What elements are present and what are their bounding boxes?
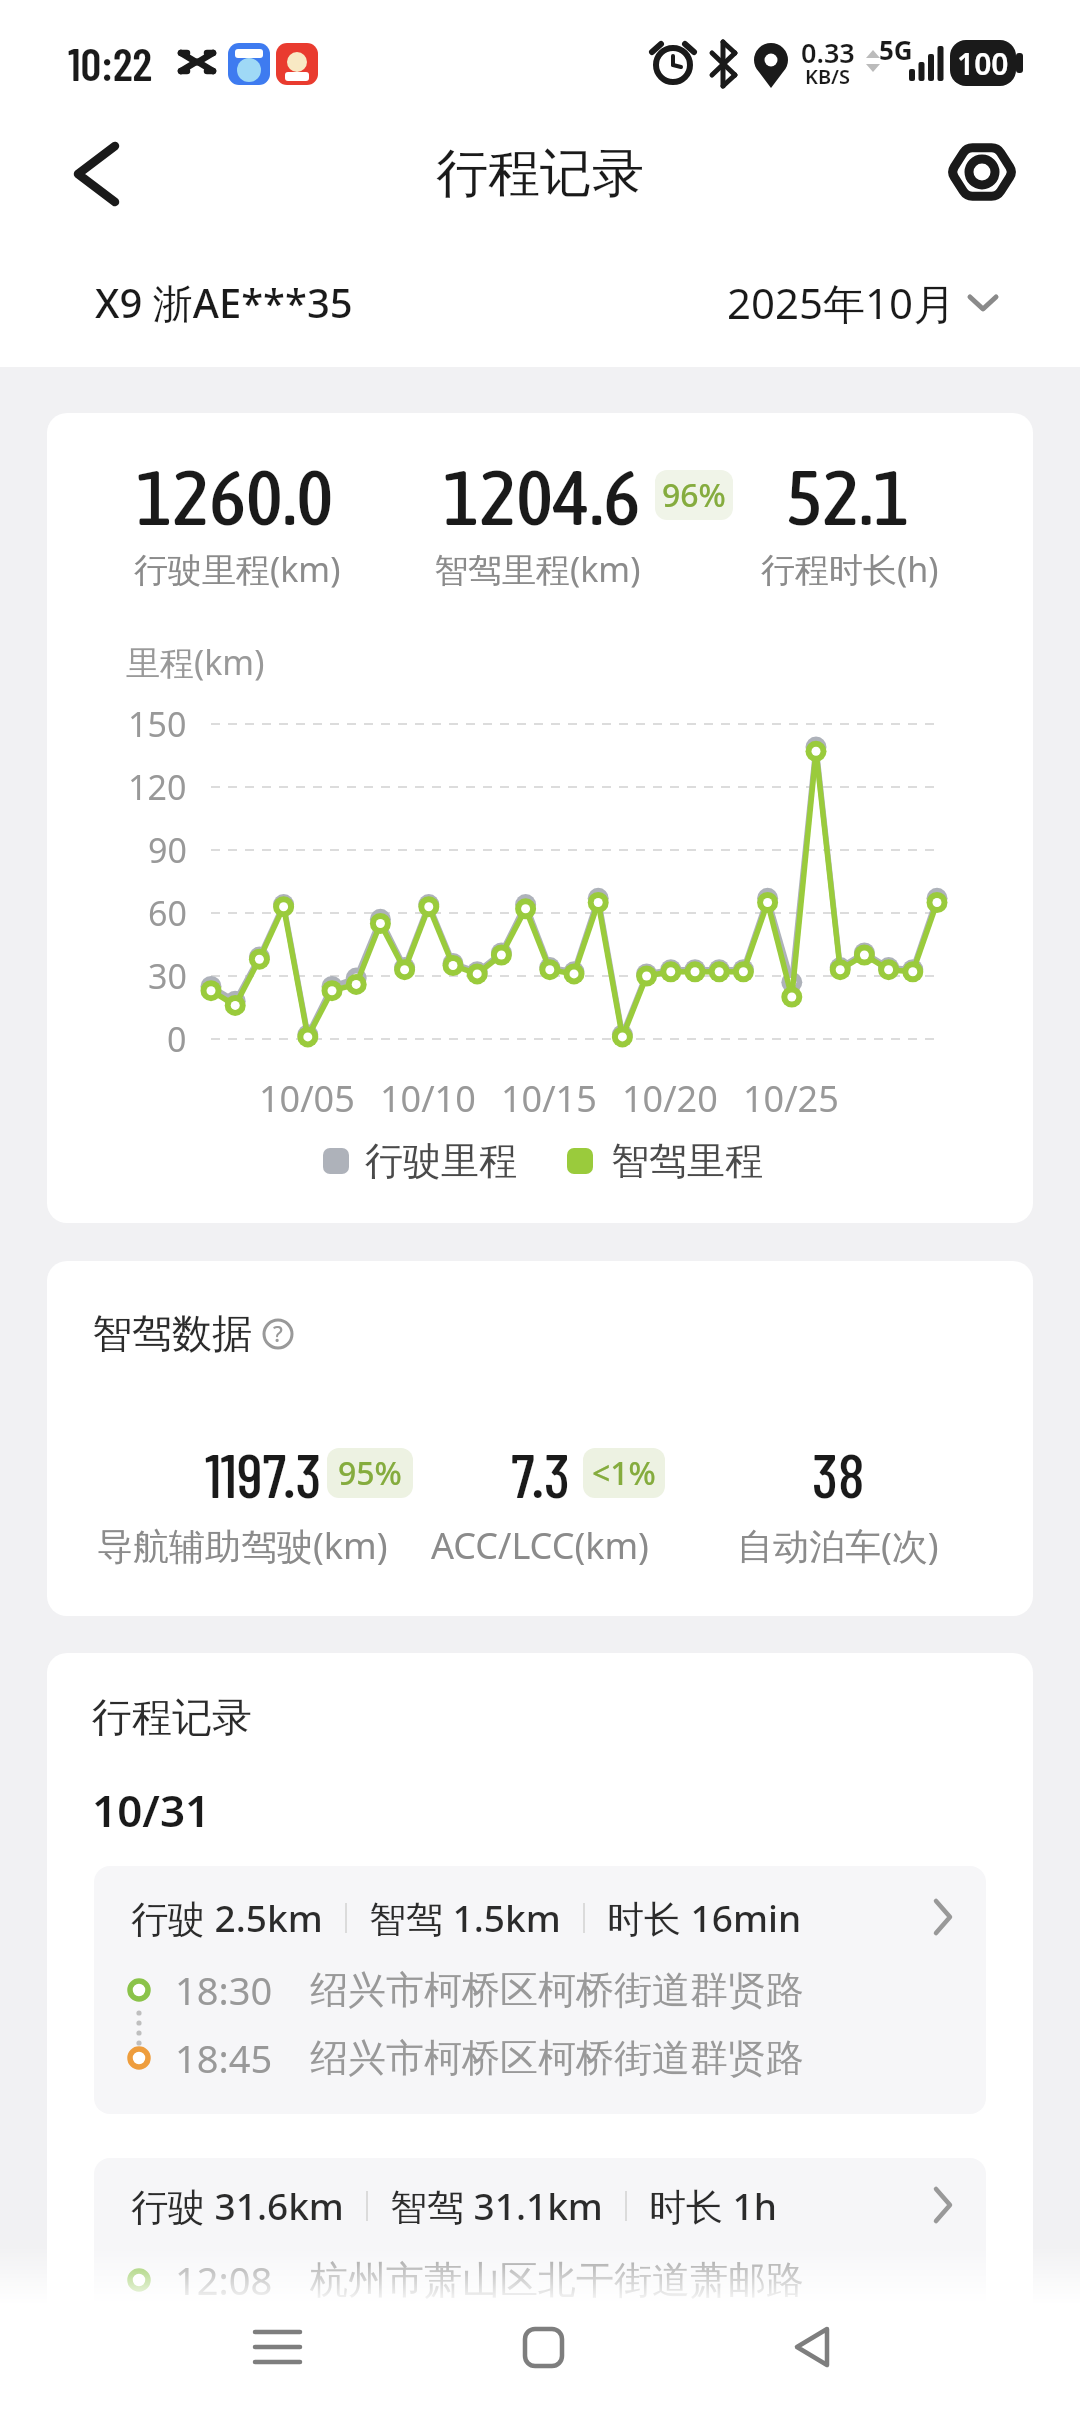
button[interactable] — [94, 2158, 986, 2406]
staticText: 智驾数据 — [92, 1308, 252, 1358]
staticText: 1260.0 — [136, 452, 334, 541]
staticText: 行程时长(h) — [761, 546, 939, 592]
staticText: 10/15 — [501, 1074, 597, 1123]
staticText: 里程(km) — [126, 639, 265, 685]
staticText: 100 — [957, 43, 1009, 84]
button[interactable] — [60, 140, 130, 210]
staticText: 10/25 — [743, 1074, 839, 1123]
button[interactable]: 2025年10月 — [700, 270, 1000, 334]
staticText: 18:30 — [175, 1964, 273, 2016]
staticText: 智驾里程 — [611, 1137, 763, 1185]
button[interactable] — [762, 2297, 862, 2397]
staticText: KB/S — [805, 63, 851, 90]
staticText: <1% — [592, 1451, 656, 1495]
staticText: 7.3 — [511, 1436, 570, 1510]
staticText: ? — [273, 1318, 283, 1348]
staticText: ACC/LCC(km) — [431, 1521, 649, 1570]
button[interactable] — [944, 136, 1020, 212]
staticText: 30 — [148, 953, 187, 999]
staticText: 5G — [879, 32, 913, 67]
button[interactable]: X9 浙AE***35 — [95, 262, 353, 342]
staticText: 120 — [128, 764, 187, 810]
staticText: 行程记录 — [92, 1692, 252, 1742]
staticText: 1204.6 — [443, 452, 641, 541]
staticText: 96% — [662, 473, 726, 517]
staticText: 行驶 31.6km — [131, 2180, 344, 2231]
staticText: X9 浙AE***35 — [95, 275, 353, 330]
staticText: 95% — [338, 1451, 402, 1495]
staticText: 智驾 31.1km — [390, 2180, 603, 2231]
staticText: 90 — [148, 827, 187, 873]
staticText: 10/05 — [259, 1074, 355, 1123]
staticText: 150 — [128, 701, 187, 747]
staticText: 10:22 — [68, 35, 152, 90]
staticText: 0 — [167, 1016, 187, 1062]
staticText: 时长 1h — [649, 2180, 777, 2231]
staticText: 60 — [148, 890, 187, 936]
staticText: 2025年10月 — [727, 274, 956, 331]
staticText: 10/20 — [622, 1074, 718, 1123]
staticText: 行程记录 — [436, 141, 644, 207]
staticText: 行驶里程 — [365, 1137, 517, 1185]
staticText: 行驶里程(km) — [134, 546, 341, 592]
staticText: 10/10 — [380, 1074, 476, 1123]
staticText: 38 — [812, 1436, 865, 1510]
staticText: 行驶 2.5km — [131, 1892, 323, 1943]
staticText: 导航辅助驾驶(km) — [97, 1521, 388, 1570]
staticText: 0.33 — [801, 34, 855, 71]
staticText: 杭州市萧山区北干街道萧邮路 — [310, 2256, 804, 2304]
button[interactable] — [227, 2297, 327, 2397]
staticText: 12:08 — [175, 2254, 273, 2306]
staticText: 绍兴市柯桥区柯桥街道群贤路 — [310, 2034, 804, 2082]
staticText: 时长 16min — [607, 1892, 802, 1943]
staticText: 自动泊车(次) — [737, 1521, 939, 1570]
staticText: 1197.3 — [205, 1436, 322, 1510]
button[interactable] — [94, 1866, 986, 2114]
staticText: 智驾 1.5km — [369, 1892, 561, 1943]
staticText: 绍兴市柯桥区柯桥街道群贤路 — [310, 1966, 804, 2014]
button[interactable] — [493, 2297, 593, 2397]
staticText: 10/31 — [92, 1780, 211, 1840]
staticText: 52.1 — [786, 452, 910, 541]
staticText: 18:45 — [175, 2032, 273, 2084]
staticText: 智驾里程(km) — [434, 546, 641, 592]
